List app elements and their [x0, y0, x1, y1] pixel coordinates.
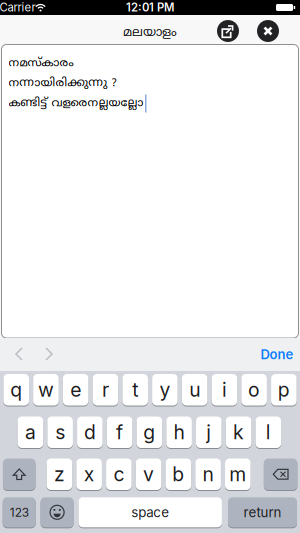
staticText: g	[143, 421, 155, 444]
staticText: l	[266, 421, 271, 444]
staticText: f	[116, 421, 123, 444]
staticText: നന്നായിരിക്കുന്നു ?	[8, 76, 116, 91]
staticText: 123	[10, 505, 29, 519]
staticText: s	[55, 421, 65, 444]
staticText: v	[143, 463, 154, 486]
staticText: space	[131, 504, 169, 520]
staticText: കണ്ടിട്ട് വളരെനല്ലയല്ലോ	[8, 96, 143, 111]
staticText: o	[248, 378, 260, 401]
staticText: Carrier	[0, 1, 35, 14]
staticText: j	[206, 421, 211, 444]
staticText: a	[25, 421, 36, 444]
staticText: k	[233, 421, 244, 444]
staticText: x	[84, 463, 95, 486]
staticText: z	[54, 463, 65, 486]
staticText: d	[84, 421, 96, 444]
staticText: i	[222, 378, 227, 401]
staticText: p	[278, 378, 290, 401]
staticText: t	[132, 378, 138, 401]
staticText: മലയാളം	[123, 25, 177, 41]
staticText: w	[38, 378, 54, 401]
staticText: b	[172, 463, 184, 486]
staticText: നമസ്കാരം	[8, 56, 73, 71]
staticText: m	[229, 463, 246, 486]
staticText: q	[10, 378, 22, 401]
staticText: h	[174, 421, 185, 444]
staticText: c	[113, 463, 124, 486]
staticText: e	[70, 378, 81, 401]
staticText: 12:01 PM	[126, 1, 174, 14]
staticText: return	[243, 504, 281, 520]
staticText: Done	[260, 347, 293, 362]
staticText: u	[189, 378, 200, 401]
staticText: r	[102, 378, 109, 401]
staticText: n	[203, 463, 214, 486]
staticText: y	[159, 378, 170, 401]
